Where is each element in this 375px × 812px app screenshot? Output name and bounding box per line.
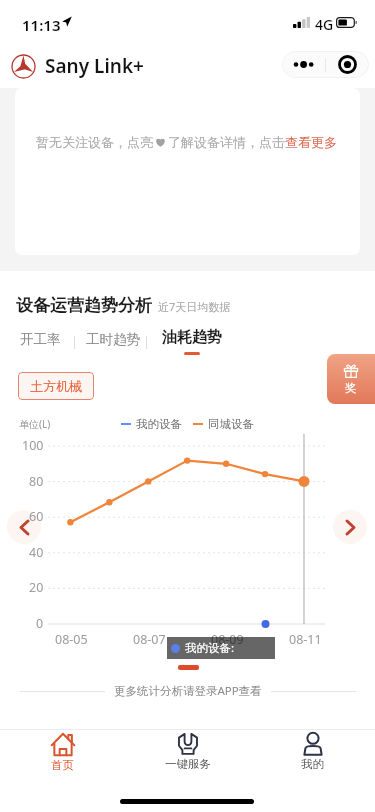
staticText: 了解设备详情，点击 [168, 134, 285, 150]
staticText: 油耗趋势 [162, 328, 222, 347]
staticText: 100 [22, 437, 44, 454]
staticText: 我的设备 [136, 417, 182, 431]
button[interactable]: 上一页 [7, 510, 41, 544]
button[interactable]: 土方机械 [18, 372, 94, 400]
staticText: 奖 [345, 381, 357, 395]
staticText: 08-07 [133, 631, 166, 648]
staticText: 设备运营趋势分析 [16, 295, 152, 316]
staticText: 首页 [51, 758, 74, 772]
staticText: 0 [36, 615, 44, 632]
staticText: 08-09 [211, 631, 244, 648]
staticText: 工时趋势 [86, 331, 140, 348]
staticText: 土方机械 [30, 378, 82, 394]
staticText: 11:13 [22, 15, 61, 35]
staticText: 我的 [301, 757, 324, 771]
staticText: Sany Link+ [45, 53, 144, 79]
staticText: 我的设备: [185, 640, 235, 656]
staticText: 60 [29, 508, 44, 525]
button[interactable]: 工时趋势 [78, 328, 148, 351]
staticText: 同城设备 [208, 417, 254, 431]
staticText: 更多统计分析请登录APP查看 [114, 683, 262, 699]
staticText: 40 [29, 544, 44, 561]
button[interactable]: 下一页 [333, 510, 367, 544]
button[interactable]: 我的 [250, 730, 375, 771]
button[interactable]: More [282, 51, 325, 78]
button[interactable]: 开工率 [12, 328, 69, 351]
staticText: 近7天日均数据 [158, 299, 231, 314]
staticText: 20 [29, 579, 44, 596]
staticText: 查看更多 [285, 134, 337, 150]
staticText: 4G [315, 15, 334, 34]
staticText: 一键服务 [165, 757, 211, 771]
staticText: 08-05 [55, 631, 88, 648]
staticText: 暂无关注设备，点亮 [36, 134, 153, 150]
button[interactable]: 油耗趋势 [154, 325, 230, 358]
staticText: 80 [29, 473, 44, 490]
staticText: 08-11 [289, 631, 322, 648]
button[interactable]: Close [326, 51, 369, 78]
staticText: 开工率 [20, 331, 61, 348]
button[interactable]: 首页 [0, 730, 125, 772]
button[interactable]: 一键服务 [125, 730, 250, 771]
button[interactable]: 奖励 [327, 354, 375, 404]
staticText: 单位(L) [19, 417, 51, 431]
